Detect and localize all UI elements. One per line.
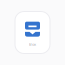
button[interactable]: Box	[15, 11, 50, 53]
staticText: Box	[29, 42, 36, 47]
